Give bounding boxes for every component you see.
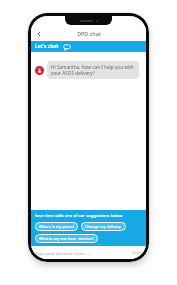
staticText: Type your question here…… [35, 250, 91, 256]
button[interactable]: Send [129, 250, 142, 256]
staticText: What is my one hour window? [39, 236, 94, 241]
other: Chat [63, 43, 71, 51]
staticText: Save time with one of our suggestions be… [35, 213, 123, 219]
button[interactable]: Type your question here…… [35, 250, 129, 256]
button[interactable]: Where is my parcel [35, 222, 78, 231]
staticText: Let's chat [35, 43, 59, 50]
button[interactable]: Back [33, 28, 45, 40]
staticText: Hi Samantha, how can I help you with you… [51, 64, 135, 76]
staticText: Where is my parcel [39, 224, 74, 229]
staticText: Change my delivery [85, 224, 122, 229]
staticText: DPD chat [77, 30, 101, 37]
button[interactable]: Change my delivery [81, 222, 126, 231]
staticText: Send [132, 250, 142, 256]
button[interactable]: Let's chat [31, 41, 146, 52]
button[interactable]: What is my one hour window? [35, 234, 98, 243]
